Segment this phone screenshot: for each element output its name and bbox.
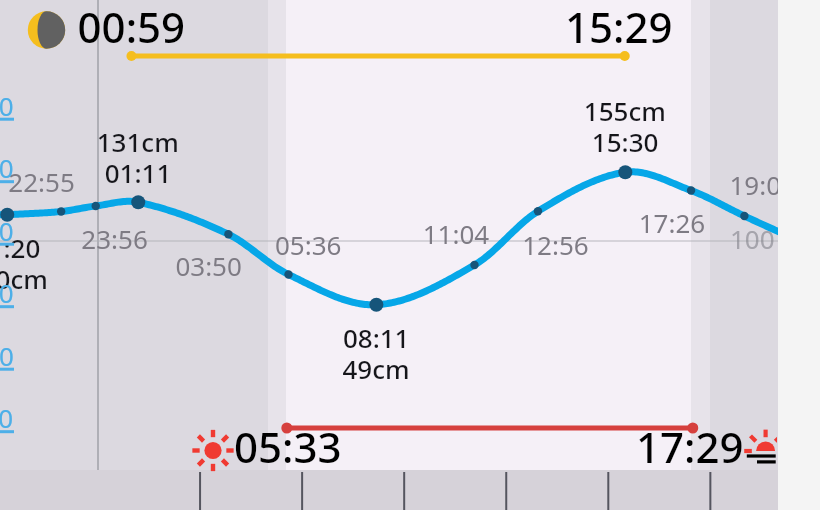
button[interactable]: [0, 0, 820, 510]
